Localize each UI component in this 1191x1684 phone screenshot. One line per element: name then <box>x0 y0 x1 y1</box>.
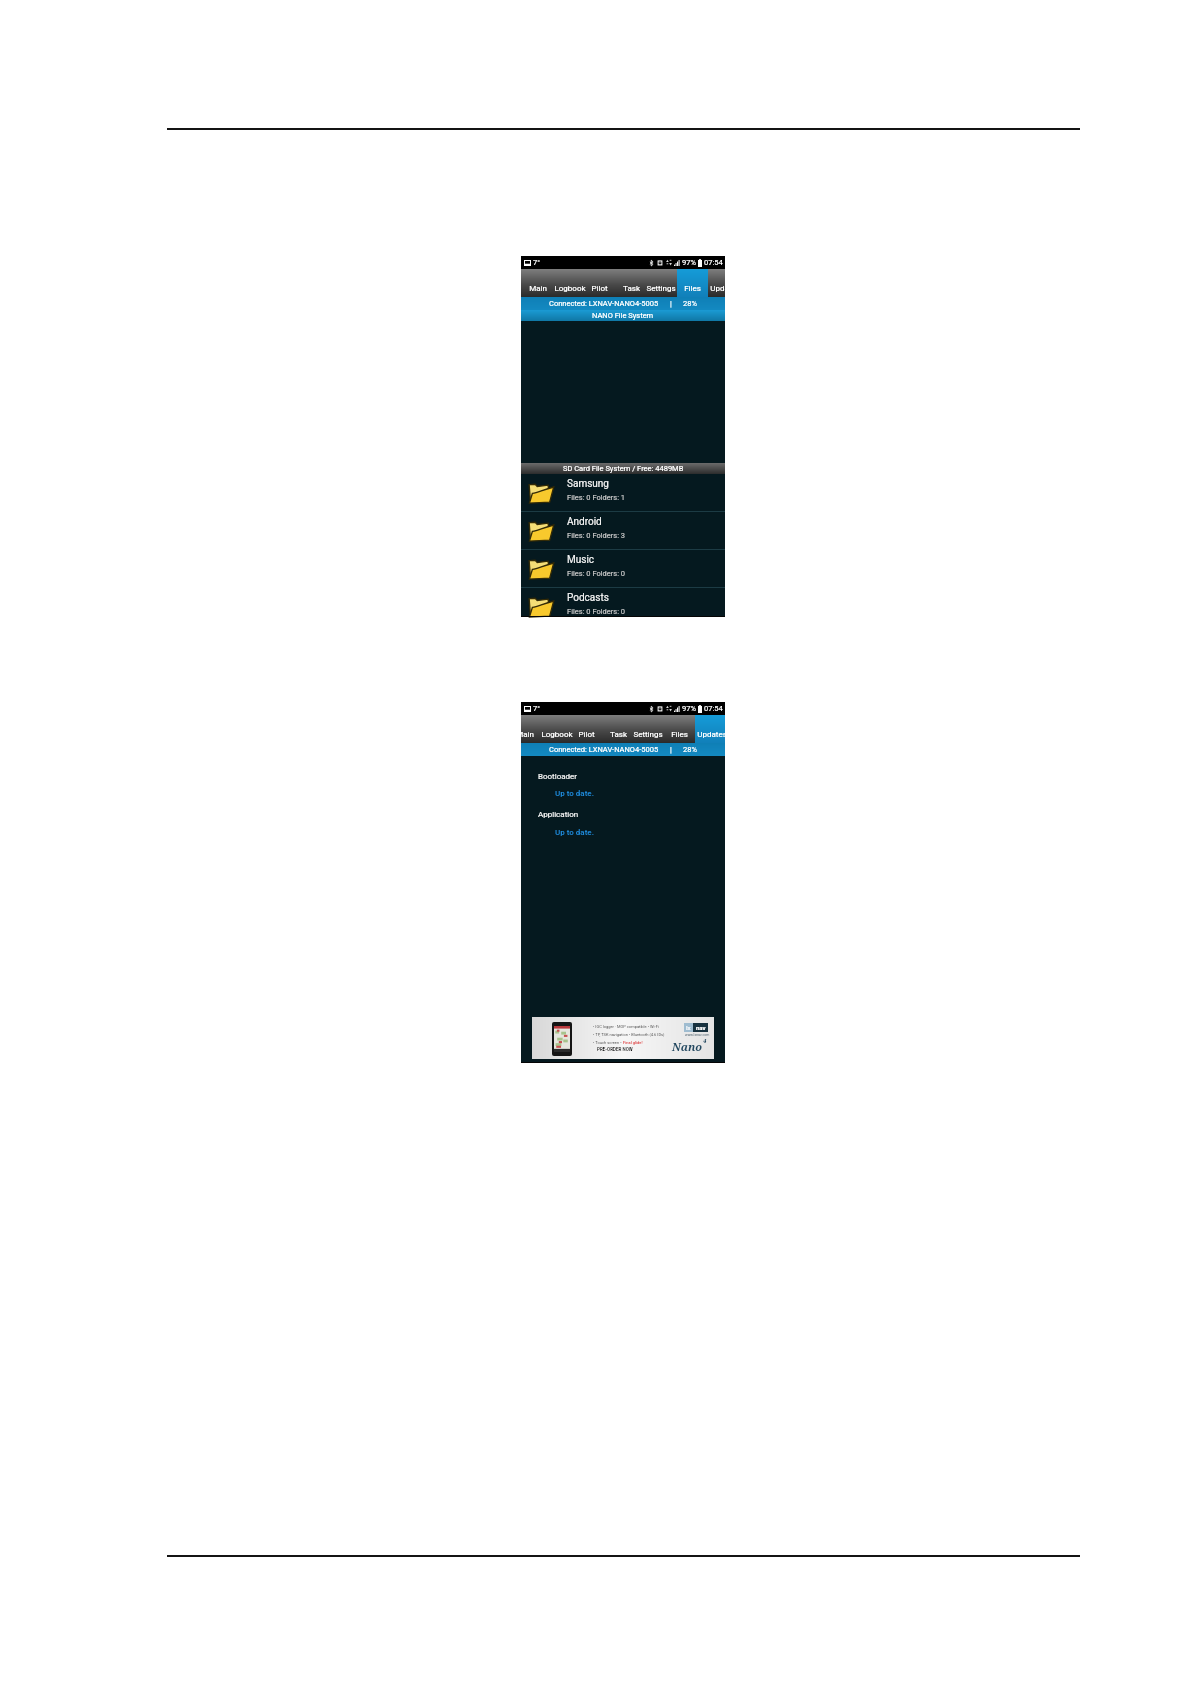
button[interactable]: LXNAV Nano 4 advertisement <box>532 1017 714 1059</box>
staticText: SD Card File System / Free: 4489MB <box>563 464 684 473</box>
button[interactable]: Main <box>523 269 553 297</box>
button[interactable]: Android <box>521 512 725 550</box>
staticText: Up to date. <box>555 828 595 837</box>
staticText: Samsung <box>567 478 609 490</box>
button[interactable]: Logbook <box>540 715 573 743</box>
staticText: Up to date. <box>555 789 595 798</box>
staticText: • Touch screen • <box>593 1040 623 1045</box>
button[interactable]: Pilot <box>586 269 613 297</box>
button[interactable]: Updates <box>695 715 729 743</box>
button[interactable]: Podcasts <box>521 588 725 617</box>
staticText: Final glide! <box>623 1040 643 1045</box>
button[interactable]: Task <box>616 269 647 297</box>
staticText: Connected: LXNAV-NANO4-5005 <box>549 745 659 754</box>
staticText: | <box>670 745 672 754</box>
staticText: • TP, TSK navigation • Bluetooth (4.6 ID… <box>593 1032 665 1037</box>
staticText: Updates <box>697 730 727 739</box>
staticText: Android <box>567 516 602 528</box>
staticText: NANO File System <box>592 311 654 320</box>
staticText: Main <box>529 284 547 293</box>
button[interactable]: Settings <box>632 715 664 743</box>
staticText: Logbook <box>541 730 573 739</box>
staticText: Task <box>623 284 640 293</box>
staticText: www.lxnav.com <box>685 1033 710 1037</box>
staticText: • IGC logger · MOP compatible • Wi-Fi <box>593 1024 659 1029</box>
staticText: Logbook <box>554 284 586 293</box>
staticText: Files: 0 Folders: 1 <box>567 493 626 502</box>
staticText: Music <box>567 554 595 566</box>
staticText: Files: 0 Folders: 0 <box>567 607 626 616</box>
staticText: 4 <box>703 1037 707 1045</box>
staticText: Updates <box>710 284 740 293</box>
staticText: PRE-ORDER NOW <box>597 1047 633 1052</box>
staticText: 07:54 <box>704 258 723 267</box>
staticText: Connected: LXNAV-NANO4-5005 <box>549 299 659 308</box>
staticText: Pilot <box>591 284 608 293</box>
staticText: 28% <box>683 299 697 308</box>
button[interactable]: Samsung <box>521 474 725 512</box>
button[interactable]: Task <box>603 715 634 743</box>
button[interactable]: Settings <box>645 269 677 297</box>
button[interactable]: Up to date. <box>555 828 595 837</box>
button[interactable]: Logbook <box>553 269 586 297</box>
staticText: Settings <box>633 730 663 739</box>
staticText: 97% <box>682 258 696 267</box>
button[interactable]: Files <box>677 269 708 297</box>
staticText: Application <box>538 810 579 819</box>
staticText: Podcasts <box>567 592 609 604</box>
button[interactable]: Files <box>664 715 695 743</box>
staticText: 7° <box>533 258 541 267</box>
button[interactable]: Main <box>510 715 540 743</box>
staticText: Files <box>684 284 701 293</box>
staticText: Pilot <box>578 730 595 739</box>
button[interactable]: Updates <box>708 269 742 297</box>
staticText: 97% <box>682 704 696 713</box>
button[interactable]: Up to date. <box>555 789 595 798</box>
staticText: Main <box>516 730 534 739</box>
staticText: Settings <box>646 284 676 293</box>
button[interactable]: Music <box>521 550 725 588</box>
button[interactable]: Pilot <box>573 715 600 743</box>
staticText: Files: 0 Folders: 3 <box>567 531 626 540</box>
staticText: | <box>670 299 672 308</box>
staticText: 07:54 <box>704 704 723 713</box>
staticText: Task <box>610 730 627 739</box>
staticText: 28% <box>683 745 697 754</box>
staticText: 7° <box>533 704 541 713</box>
staticText: Files: 0 Folders: 0 <box>567 569 626 578</box>
staticText: Bootloader <box>538 772 578 781</box>
staticText: lx <box>686 1024 691 1031</box>
staticText: Files <box>671 730 688 739</box>
staticText: Nano <box>672 1039 703 1054</box>
staticText: nav <box>696 1024 706 1031</box>
